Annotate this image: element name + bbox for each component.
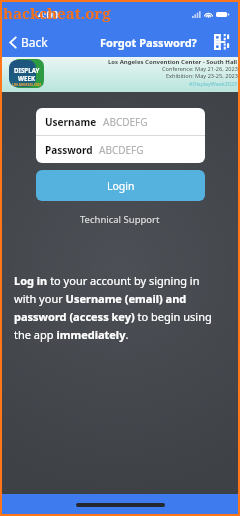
staticText: Login [107, 179, 135, 193]
staticText: #DisplayWeek2023 [189, 80, 238, 87]
button[interactable]: Username [36, 108, 205, 135]
staticText: Technical Support [80, 213, 160, 226]
button[interactable]: Scan QR code [212, 32, 232, 52]
staticText: WEEK [18, 74, 36, 82]
staticText: ABCDEFG [99, 143, 144, 157]
staticText: Los Angeles Convention Center - South Ha… [108, 58, 238, 66]
button[interactable]: Login [36, 170, 205, 201]
button[interactable]: Back [7, 32, 50, 52]
staticText: 4:00 [38, 8, 58, 22]
staticText: ABCDEFG [103, 115, 148, 129]
button[interactable]: Password [36, 136, 205, 163]
staticText: hackcheat.org [3, 3, 111, 23]
staticText: Password [45, 143, 93, 157]
staticText: Forgot Password? [100, 35, 197, 50]
staticText: Conference: May 21-26, 2023 [162, 65, 238, 73]
staticText: Back [21, 34, 48, 50]
staticText: Username [45, 115, 97, 129]
staticText: Exhibition: May 23-25, 2023 [166, 72, 238, 80]
staticText: Log in to your account by signing in wit… [14, 273, 220, 342]
staticText: DISPLAY [14, 66, 40, 74]
button[interactable]: Technical Support [76, 209, 164, 230]
staticText: LOS ANGELES 2023 [12, 83, 42, 87]
